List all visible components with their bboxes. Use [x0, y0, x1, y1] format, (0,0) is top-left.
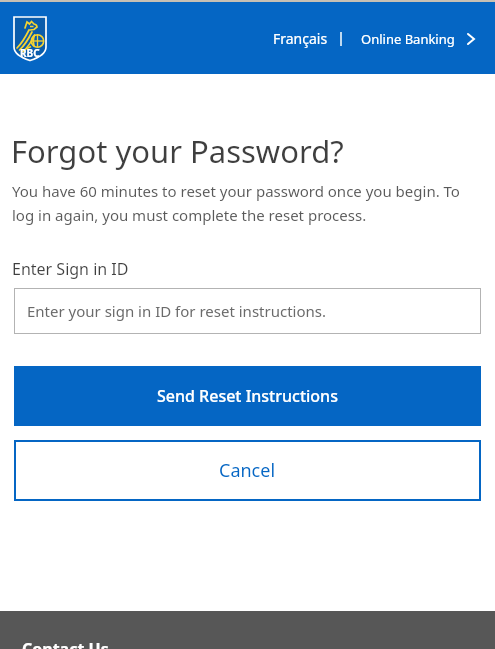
button[interactable]: Send Reset Instructions [14, 366, 481, 426]
button[interactable]: RBC [13, 16, 47, 62]
staticText: Send Reset Instructions [157, 385, 338, 407]
staticText: Contact Us [22, 638, 109, 649]
button[interactable]: Enter your sign in ID for reset instruct… [14, 288, 481, 334]
staticText: Forgot your Password? [11, 130, 344, 172]
staticText: You have 60 minutes to reset your passwo… [12, 181, 460, 225]
button[interactable]: Online Banking [361, 30, 475, 48]
button[interactable]: Contact Us [22, 638, 109, 649]
staticText: Cancel [219, 458, 276, 483]
staticText: Enter Sign in ID [12, 258, 129, 280]
staticText: Enter your sign in ID for reset instruct… [27, 301, 326, 321]
staticText: Français [273, 29, 328, 48]
button[interactable]: Français [273, 29, 328, 48]
staticText: Online Banking [361, 30, 455, 48]
staticText: RBC [20, 46, 40, 60]
button[interactable]: Cancel [14, 440, 481, 501]
